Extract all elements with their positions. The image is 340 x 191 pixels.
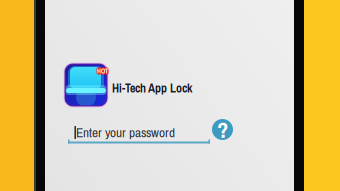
staticText: Hi-Tech App Lock [112, 80, 192, 96]
staticText: ? [217, 114, 228, 145]
staticText: Enter your password [76, 123, 175, 141]
staticText: HOT [97, 66, 108, 75]
button[interactable]: Help [212, 119, 233, 140]
button[interactable]: Enter your password [68, 126, 210, 150]
